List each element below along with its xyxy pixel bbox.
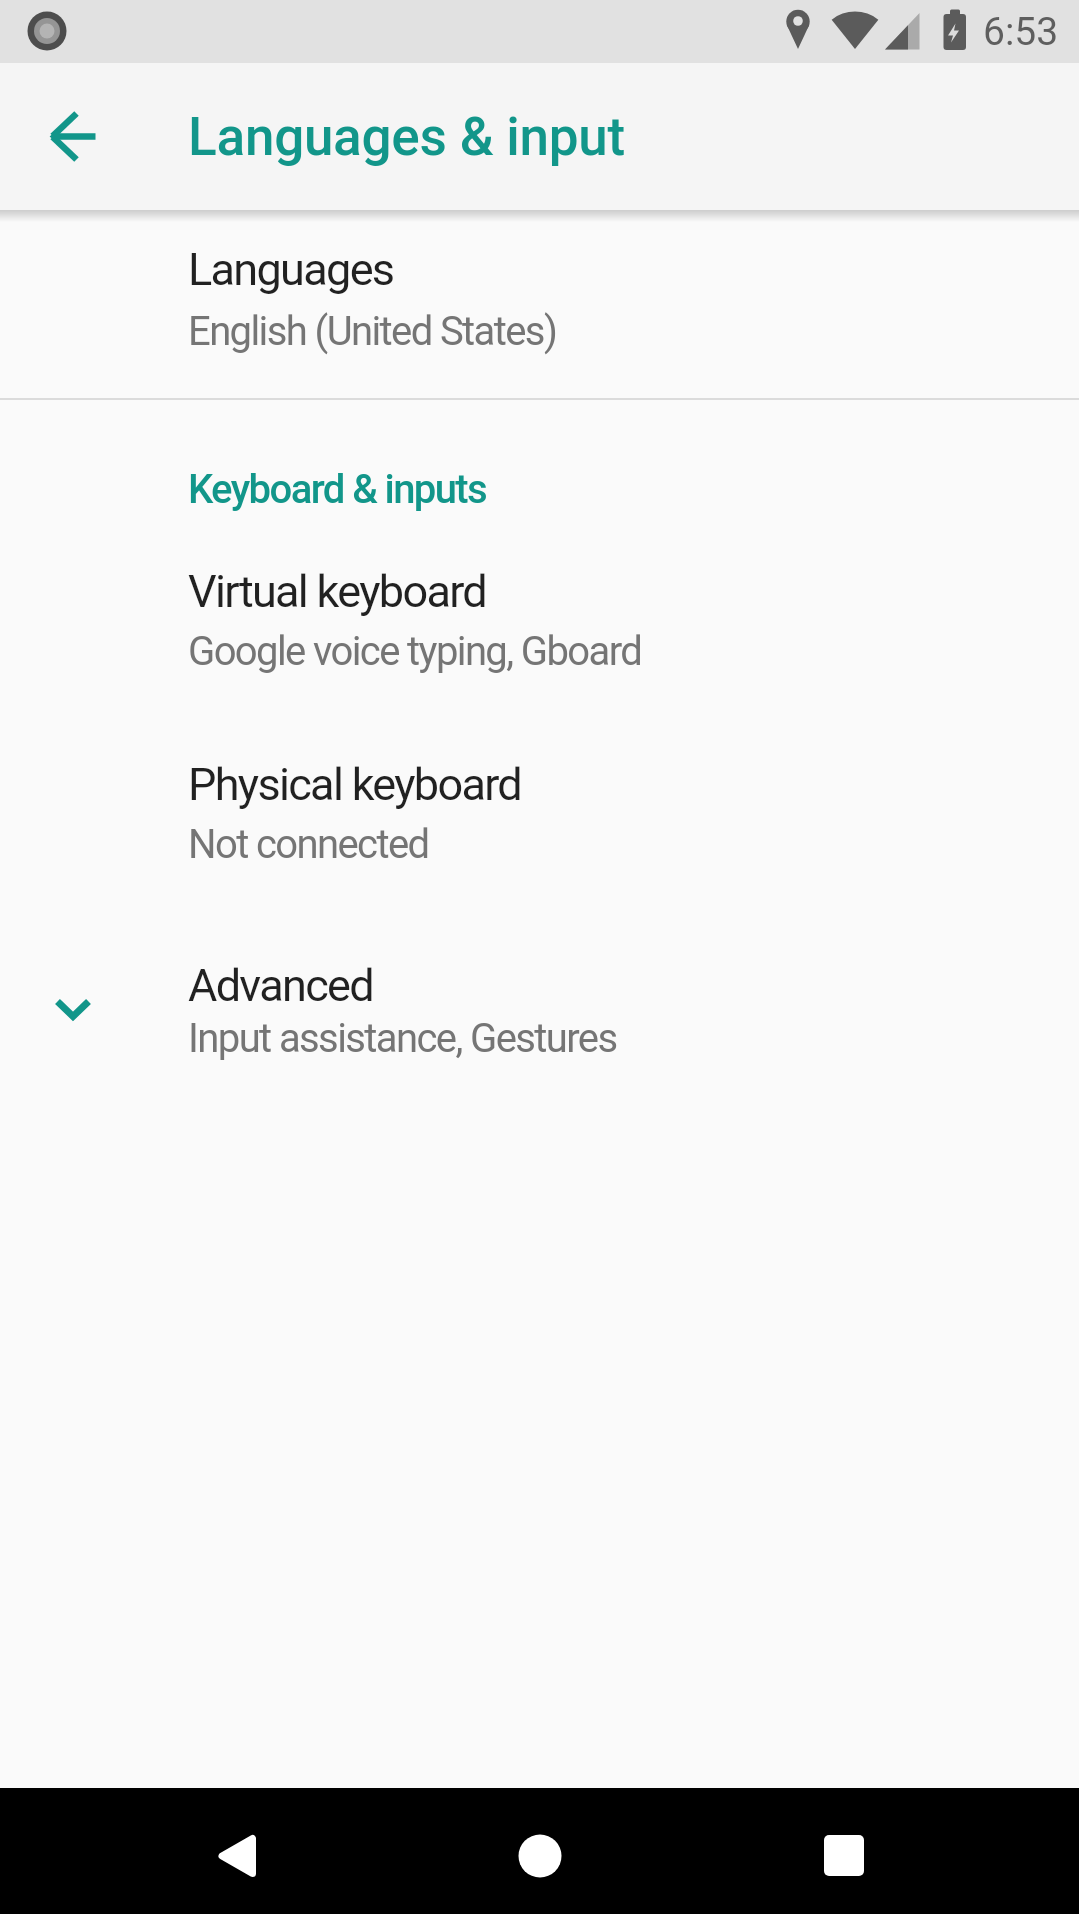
button[interactable]: [779, 1793, 909, 1909]
staticText: 6:53: [983, 9, 1059, 55]
staticText: Advanced: [188, 959, 373, 1012]
staticText: Keyboard & inputs: [188, 466, 487, 513]
staticText: Google voice typing, Gboard: [188, 628, 642, 675]
button[interactable]: Languages: [0, 211, 1079, 398]
staticText: Not connected: [188, 821, 429, 868]
button[interactable]: [172, 1793, 302, 1909]
staticText: English (United States): [188, 308, 557, 355]
staticText: Physical keyboard: [188, 758, 522, 811]
button[interactable]: Advanced: [0, 935, 1079, 1100]
staticText: Languages & input: [188, 106, 625, 168]
button[interactable]: [475, 1793, 605, 1909]
button[interactable]: [31, 106, 119, 194]
staticText: Virtual keyboard: [188, 565, 487, 618]
staticText: Languages: [188, 243, 394, 296]
staticText: Input assistance, Gestures: [188, 1015, 617, 1062]
button[interactable]: Physical keyboard: [0, 745, 1079, 935]
button[interactable]: Virtual keyboard: [0, 555, 1079, 745]
